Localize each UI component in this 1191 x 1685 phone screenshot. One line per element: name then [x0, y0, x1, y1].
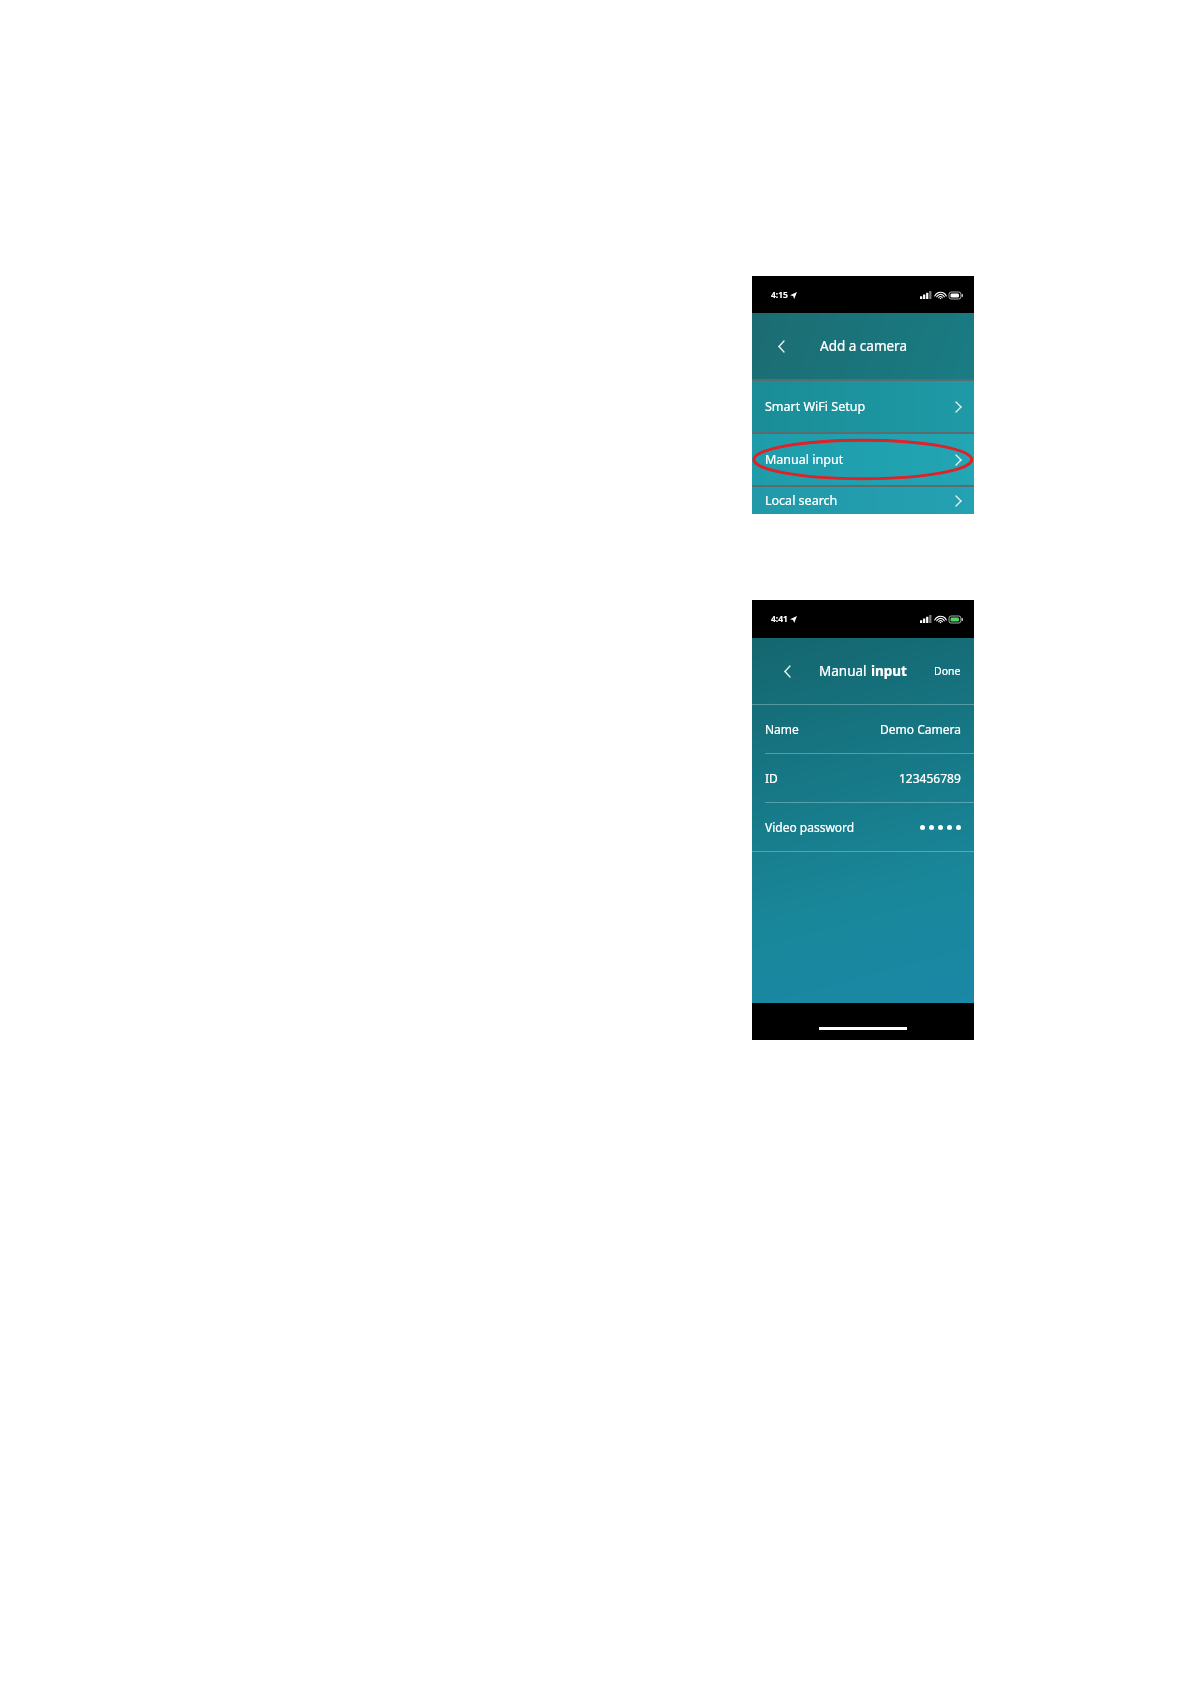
- button[interactable]: ID: [752, 754, 974, 802]
- staticText: Local search: [765, 492, 838, 509]
- staticText: ID: [765, 770, 778, 786]
- button[interactable]: Video password: [752, 803, 974, 851]
- staticText: Manual: [819, 662, 871, 680]
- staticText: 4:41: [771, 613, 788, 625]
- staticText: input: [871, 662, 907, 680]
- button[interactable]: Done: [929, 658, 966, 684]
- staticText: 123456789: [899, 770, 961, 786]
- button[interactable]: Back: [774, 658, 800, 684]
- staticText: 4:15: [771, 289, 788, 301]
- staticText: Done: [934, 664, 961, 678]
- button[interactable]: Local search: [752, 487, 974, 514]
- staticText: Add a camera: [820, 337, 907, 355]
- staticText: Manual input: [765, 451, 844, 468]
- button[interactable]: Name: [752, 705, 974, 753]
- button[interactable]: Smart WiFi Setup: [752, 381, 974, 432]
- staticText: Smart WiFi Setup: [765, 398, 866, 415]
- button[interactable]: Back: [768, 333, 794, 359]
- button[interactable]: Manual input: [752, 434, 974, 485]
- staticText: Name: [765, 721, 799, 737]
- staticText: Demo Camera: [880, 721, 961, 737]
- staticText: Video password: [765, 819, 855, 835]
